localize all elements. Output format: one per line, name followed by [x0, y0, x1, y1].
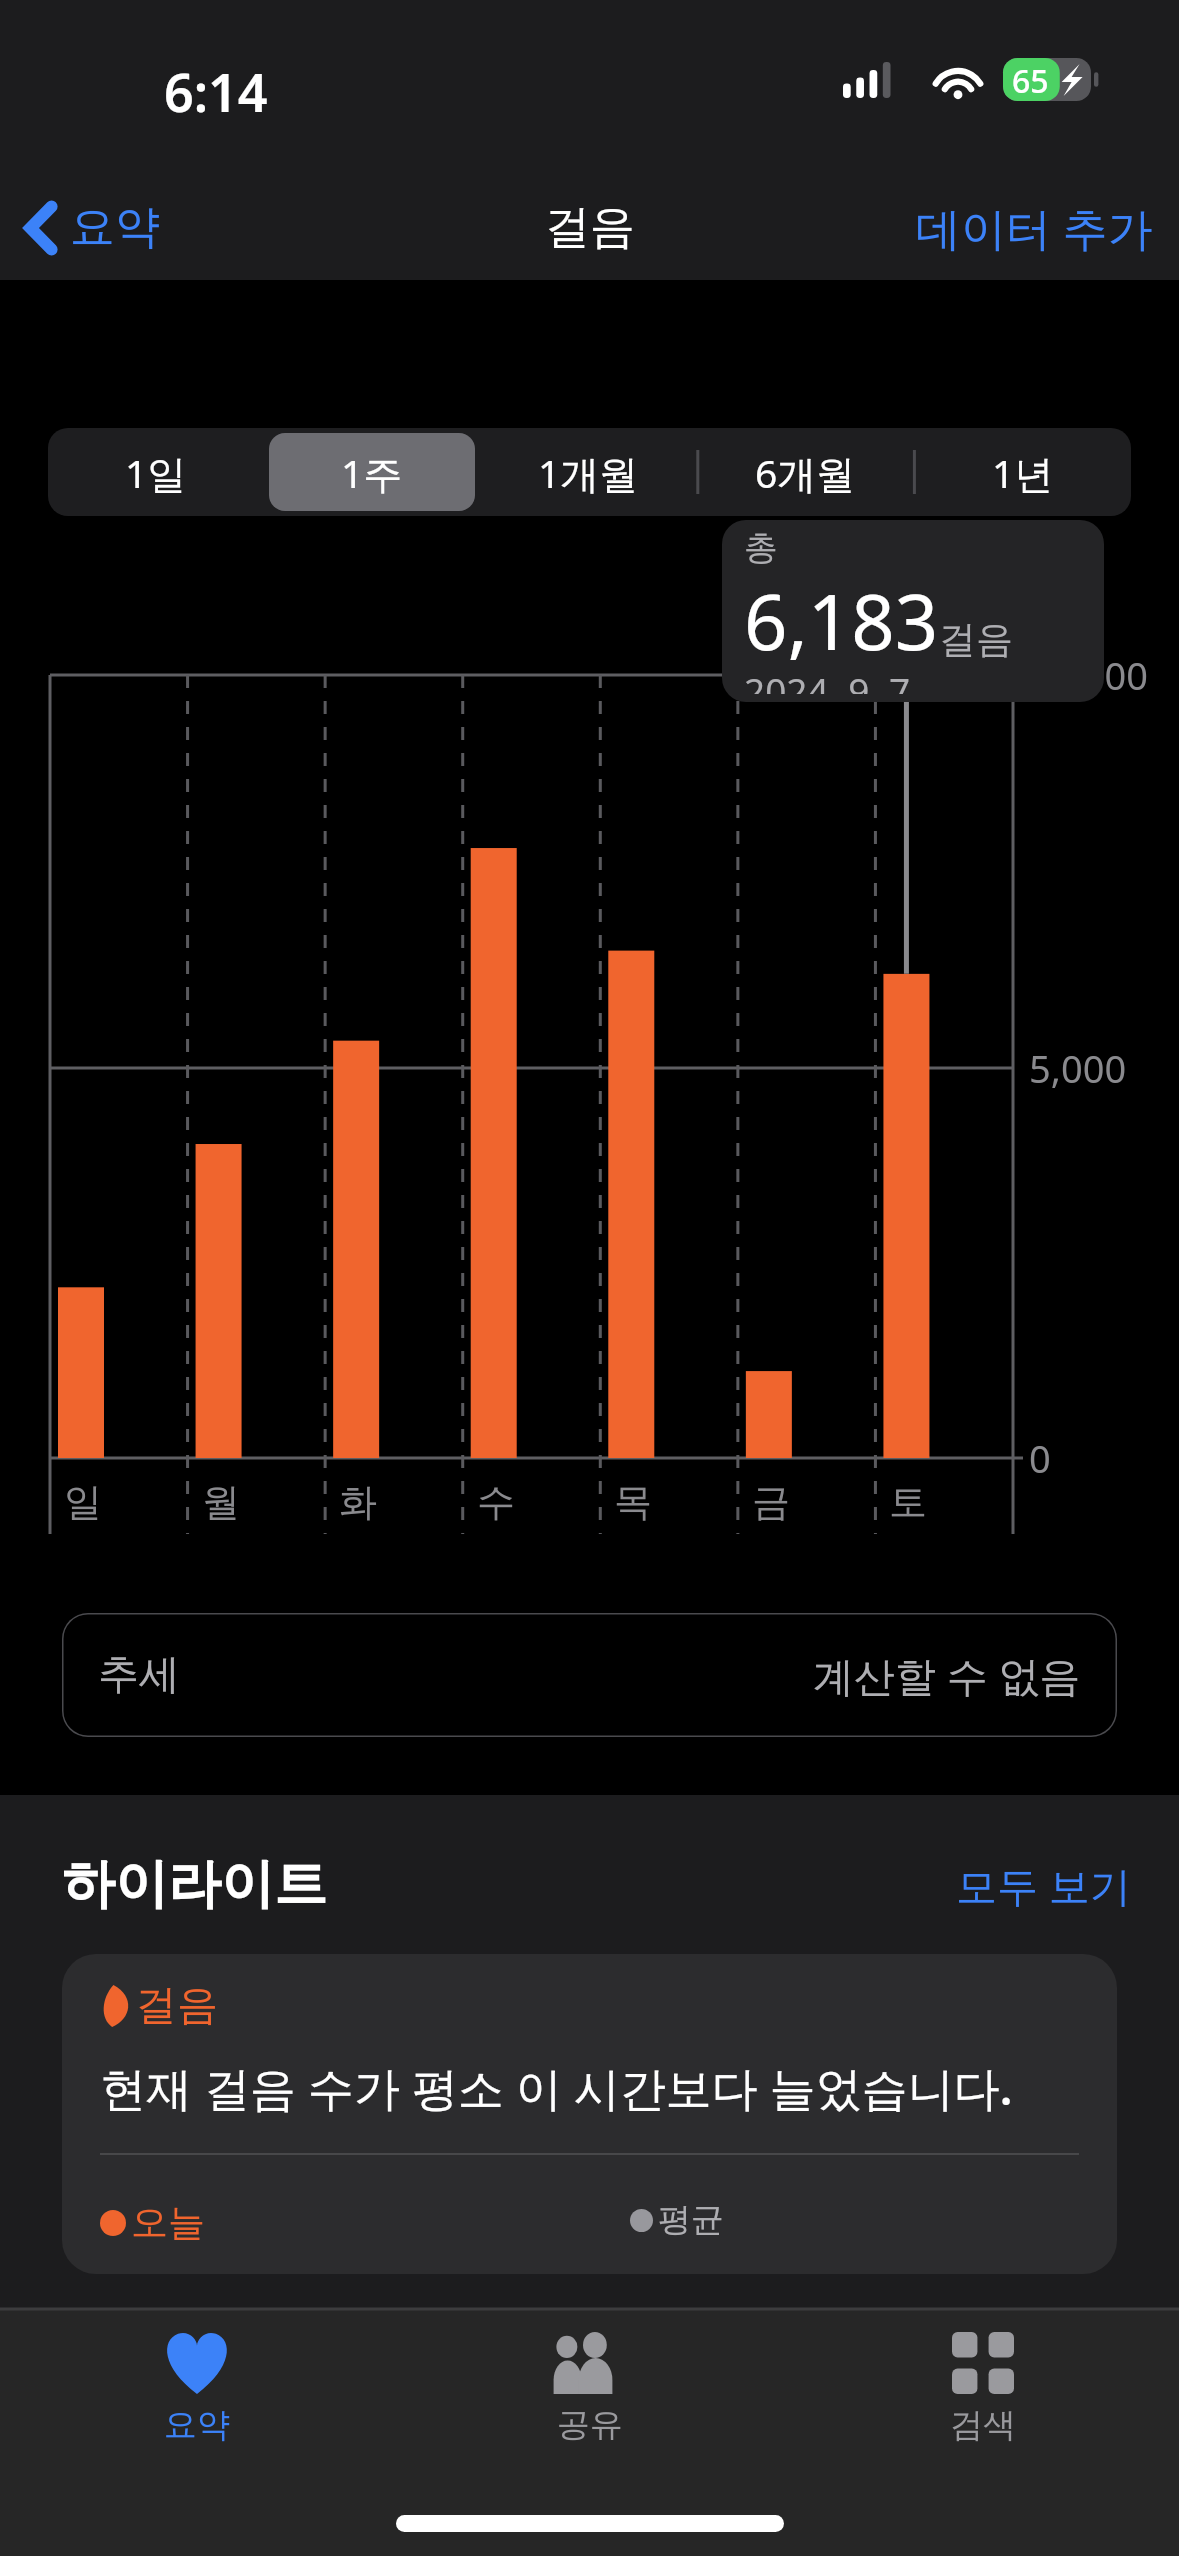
staticText: 평균 [658, 2199, 724, 2241]
staticText: 현재 걸음 수가 평소 이 시간보다 늘었습니다. [100, 2056, 1013, 2119]
staticText: 걸음 [136, 1980, 218, 2032]
staticText: 수 [477, 1478, 515, 1526]
staticText: 검색 [950, 2404, 1016, 2446]
button[interactable]: 1개월 [485, 433, 692, 511]
button[interactable]: 추세 [62, 1613, 1117, 1737]
button[interactable]: 1일 [53, 433, 259, 511]
staticText: 1일 [125, 446, 187, 499]
staticText: 화 [339, 1478, 377, 1526]
button[interactable]: 검색 [786, 2328, 1179, 2450]
staticText: 토 [889, 1478, 927, 1526]
staticText: 6:14 [164, 56, 268, 127]
staticText: 총 [744, 526, 778, 569]
staticText: 2024. 9. 7. [744, 665, 920, 694]
button[interactable]: 공유 [393, 2328, 786, 2450]
staticText: 월 [202, 1478, 240, 1526]
staticText: 목 [614, 1478, 652, 1526]
staticText: 요약 [164, 2404, 230, 2446]
staticText: 금 [752, 1478, 790, 1526]
staticText: 계산할 수 없음 [813, 1647, 1081, 1703]
staticText: 65 [1012, 59, 1049, 103]
staticText: 6,183 [744, 569, 939, 673]
staticText: 1년 [992, 446, 1054, 499]
staticText: 6개월 [755, 446, 856, 499]
staticText: 5,000 [1029, 1042, 1127, 1094]
button[interactable]: Back [26, 199, 160, 256]
staticText: 1주 [341, 446, 403, 499]
staticText: 10,000 [1029, 649, 1148, 701]
staticText: 0 [1029, 1432, 1051, 1484]
button[interactable]: 1주 [269, 433, 475, 511]
staticText: 추세 [98, 1649, 180, 1701]
button[interactable]: 6개월 [702, 433, 909, 511]
staticText: 공유 [557, 2404, 623, 2446]
button[interactable]: 데이터 추가 [916, 197, 1153, 258]
staticText: 하이라이트 [62, 1851, 327, 1918]
staticText: 걸음 [939, 616, 1013, 663]
button[interactable]: 요약 [0, 2328, 393, 2450]
other: Back [26, 203, 58, 253]
staticText: 1개월 [538, 446, 639, 499]
button[interactable]: 걸음 [62, 1954, 1117, 2274]
staticText: 요약 [70, 199, 160, 256]
staticText: 일 [64, 1478, 102, 1526]
button[interactable]: 모두 보기 [956, 1857, 1131, 1913]
staticText: 오늘 [131, 2199, 205, 2246]
button[interactable]: 1년 [919, 433, 1126, 511]
staticText: 걸음 [545, 199, 635, 256]
